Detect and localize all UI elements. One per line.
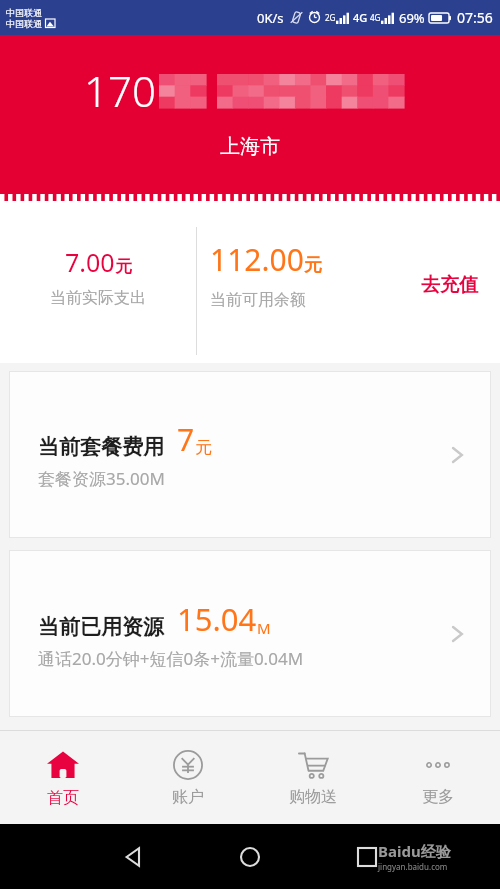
button[interactable]: 账户: [125, 731, 250, 824]
staticText: 首页: [47, 788, 79, 808]
button[interactable]: 当前套餐费用: [10, 372, 490, 537]
button[interactable]: 去充值: [413, 267, 486, 303]
other: 查看详情: [446, 623, 468, 645]
staticText: 2G: [325, 12, 336, 23]
staticText: 170: [84, 62, 156, 119]
staticText: 通话20.0分钟+短信0条+流量0.04M: [38, 647, 304, 670]
staticText: 元: [195, 437, 212, 458]
staticText: 7: [177, 419, 195, 460]
staticText: 购物送: [289, 787, 337, 807]
staticText: 账户: [172, 787, 204, 807]
staticText: 当前套餐费用: [38, 434, 164, 460]
button[interactable]: 最近任务: [344, 834, 390, 880]
staticText: 当前已用资源: [38, 614, 164, 640]
staticText: 4G: [353, 10, 368, 25]
staticText: 4G: [370, 12, 381, 23]
staticText: 7.00: [65, 245, 115, 279]
staticText: 元: [304, 254, 322, 277]
button[interactable]: 当前已用资源: [10, 551, 490, 716]
staticText: 69%: [399, 9, 425, 27]
staticText: 中国联通: [6, 18, 42, 29]
staticText: jingyan.baidu.com: [378, 861, 448, 872]
staticText: 当前实际支出: [50, 288, 146, 308]
staticText: 中国联通: [6, 7, 42, 18]
staticText: 15.04: [177, 598, 257, 640]
staticText: 去充值: [421, 273, 478, 297]
button[interactable]: 返回: [110, 834, 156, 880]
staticText: 元: [115, 256, 132, 277]
staticText: 0K/s: [257, 9, 284, 27]
staticText: 07:56: [457, 8, 493, 27]
staticText: 套餐资源35.00M: [38, 467, 165, 490]
other: 查看详情: [446, 444, 468, 466]
staticText: 更多: [422, 787, 454, 807]
staticText: 上海市: [220, 134, 280, 159]
staticText: 当前可用余额: [210, 290, 306, 310]
button[interactable]: 购物送: [250, 731, 375, 824]
staticText: 112.00: [210, 239, 304, 280]
staticText: Baidu经验: [378, 841, 451, 861]
button[interactable]: 首页: [0, 731, 125, 824]
button[interactable]: 主屏幕: [227, 834, 273, 880]
button[interactable]: 更多: [375, 731, 500, 824]
staticText: M: [257, 618, 271, 638]
